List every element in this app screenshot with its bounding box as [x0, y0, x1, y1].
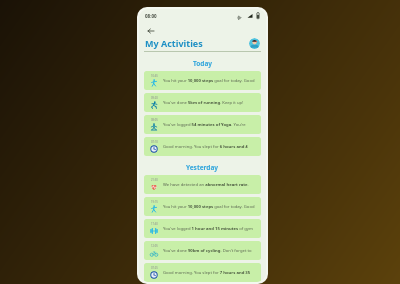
- staticText: 12:05: [151, 244, 158, 248]
- staticText: You've logged 54 minutes of Yoga. You're…: [163, 122, 257, 128]
- staticText: 07:10: [151, 140, 158, 144]
- staticText: 17:40: [151, 222, 158, 226]
- button[interactable]: 07:25: [144, 263, 261, 282]
- staticText: We have detected an abnormal heart rate.…: [163, 182, 257, 188]
- button[interactable]: 19:15: [144, 197, 261, 216]
- staticText: You hit your 10,000 steps goal for today…: [163, 204, 257, 210]
- button[interactable]: 07:10: [144, 137, 261, 156]
- staticText: Yesterday: [186, 163, 219, 172]
- button[interactable]: 09:20: [144, 93, 261, 112]
- staticText: 08:00: [145, 13, 157, 19]
- staticText: Good morning. You slept for 6 hours and …: [163, 144, 257, 150]
- staticText: 10:45: [151, 74, 158, 78]
- staticText: 07:25: [151, 266, 158, 270]
- button[interactable]: Back: [145, 25, 156, 36]
- staticText: Good morning. You slept for 7 hours and …: [163, 270, 257, 276]
- staticText: 08:05: [151, 118, 158, 122]
- button[interactable]: 17:40: [144, 219, 261, 238]
- button[interactable]: My Activities: [145, 37, 203, 49]
- staticText: 09:20: [151, 96, 158, 100]
- staticText: Today: [193, 59, 213, 68]
- button[interactable]: 08:05: [144, 115, 261, 134]
- staticText: You hit your 10,000 steps goal for today…: [163, 78, 257, 84]
- staticText: You've done 90km of cycling. Don't forge…: [163, 248, 257, 254]
- staticText: 21:30: [151, 178, 158, 182]
- staticText: You've logged 1 hour and 15 minutes of g…: [163, 226, 257, 232]
- button[interactable]: 10:45: [144, 71, 261, 90]
- button[interactable]: Profile: [249, 38, 260, 49]
- staticText: 19:15: [151, 200, 158, 204]
- button[interactable]: 12:05: [144, 241, 261, 260]
- button[interactable]: 21:30: [144, 175, 261, 194]
- staticText: You've done 5km of running. Keep it up!: [163, 100, 244, 106]
